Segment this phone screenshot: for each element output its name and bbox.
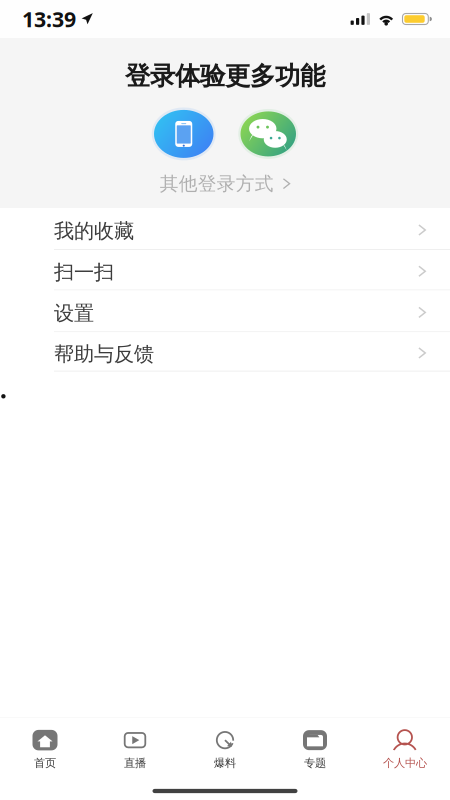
button[interactable]: 帮助与反馈 [0,332,450,372]
button[interactable]: 个人中心 [360,718,450,782]
button[interactable]: 扫一扫 [0,250,450,290]
button[interactable]: 专题 [270,718,360,782]
staticText: 我的收藏 [54,218,134,244]
button[interactable]: 其他登录方式 [160,168,290,199]
staticText: 帮助与反馈 [54,341,154,367]
button[interactable]: 手机号登录 [154,110,213,158]
staticText: 个人中心 [383,756,427,770]
button[interactable]: 爆料 [180,718,270,782]
staticText: 专题 [304,756,326,770]
staticText: 其他登录方式 [160,172,274,195]
button[interactable]: 首页 [0,718,90,782]
staticText: 扫一扫 [54,260,114,285]
button[interactable]: 我的收藏 [0,208,450,250]
button[interactable]: 直播 [90,718,180,782]
button[interactable]: 设置 [0,290,450,332]
staticText: 爆料 [214,756,236,770]
staticText: 设置 [54,301,94,326]
staticText: 登录体验更多功能 [125,60,325,92]
staticText: 直播 [124,756,146,770]
staticText: 13:39 [22,4,76,34]
staticText: 首页 [34,756,56,770]
button[interactable]: 微信登录 [240,111,296,156]
